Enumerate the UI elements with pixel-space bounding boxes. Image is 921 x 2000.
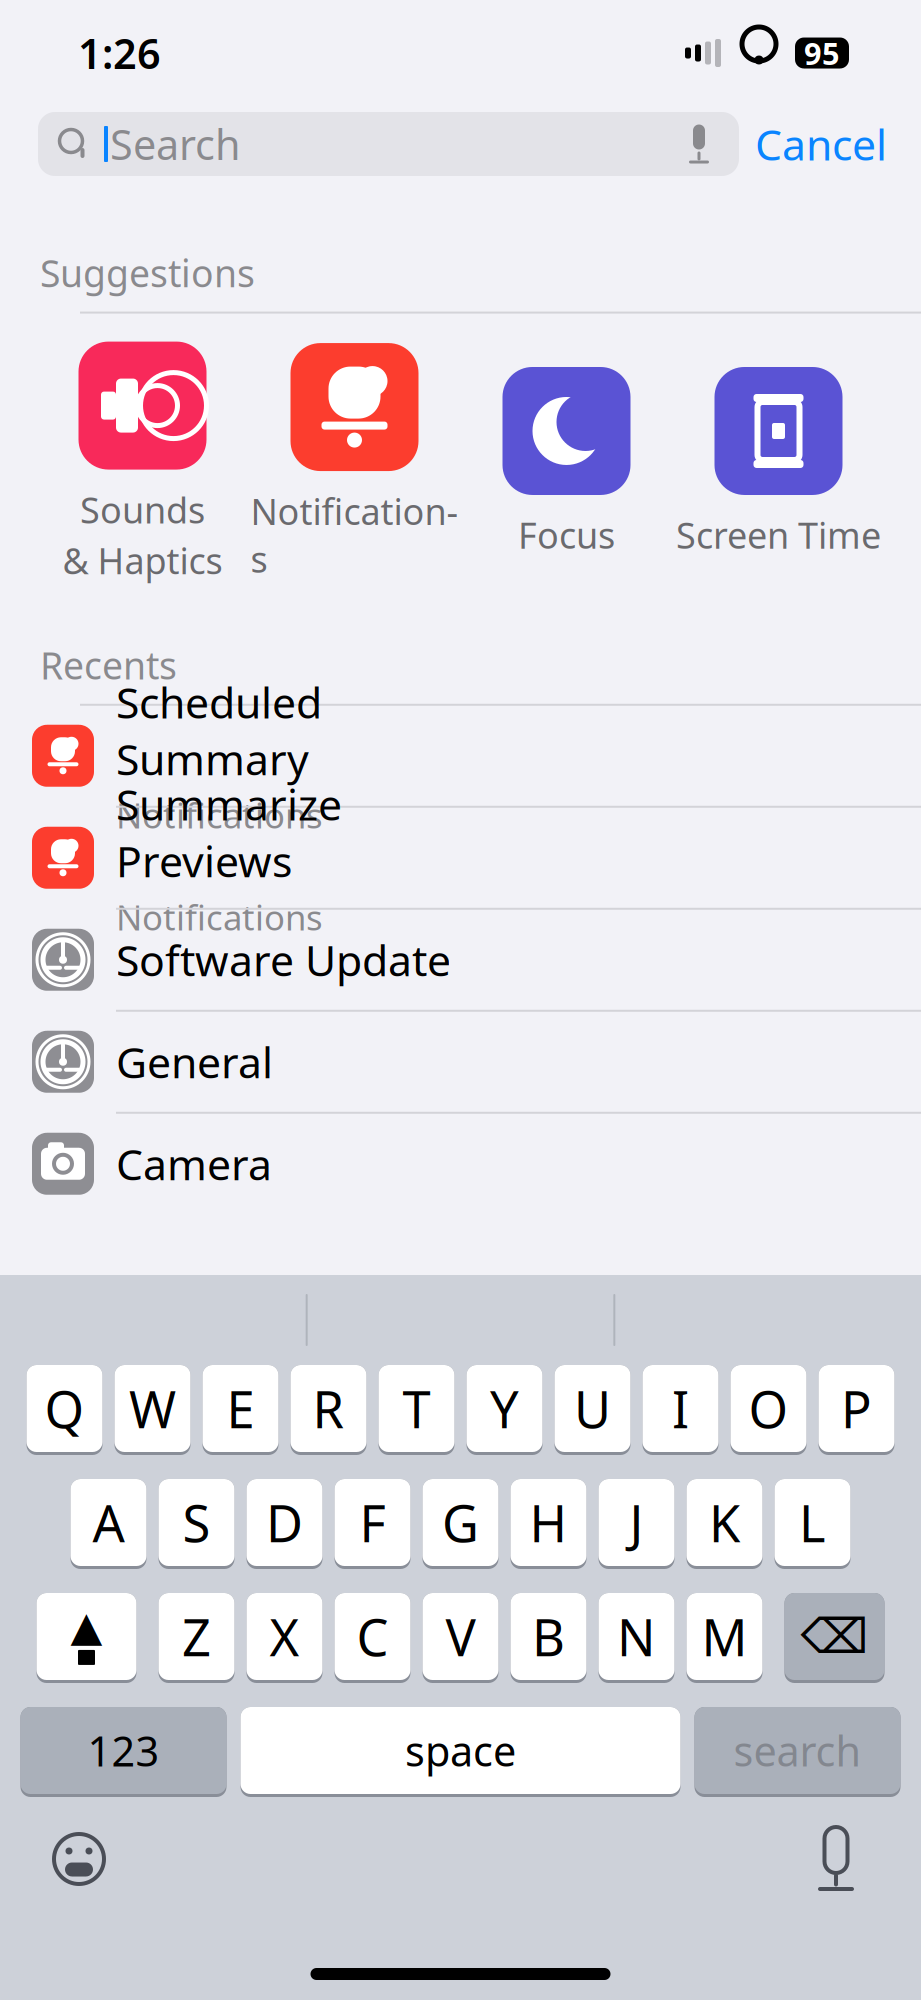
button[interactable]: Y — [466, 1365, 542, 1455]
button[interactable]: Sounds — [36, 342, 248, 584]
button[interactable]: Scheduled Summary — [0, 706, 921, 806]
staticText: E — [226, 1375, 254, 1442]
staticText: ⌫ — [800, 1609, 868, 1664]
staticText: 95 — [804, 33, 840, 73]
staticText: C — [356, 1603, 388, 1670]
staticText: B — [532, 1603, 565, 1670]
button[interactable]: I — [642, 1365, 718, 1455]
staticText: Sounds — [80, 486, 205, 533]
staticText: R — [312, 1375, 344, 1442]
button[interactable]: Delete — [784, 1593, 884, 1683]
button[interactable]: Notifications — [248, 343, 460, 583]
staticText: Notifications — [116, 894, 323, 940]
staticText: Recents — [40, 640, 177, 690]
button[interactable]: B — [510, 1593, 586, 1683]
staticText: S — [182, 1489, 210, 1556]
staticText: Focus — [518, 511, 615, 559]
staticText: Q — [44, 1375, 84, 1442]
button[interactable]: J — [598, 1479, 674, 1569]
button[interactable]: Screen Time — [672, 367, 884, 559]
staticText: 1:26 — [78, 26, 161, 80]
button[interactable]: D — [246, 1479, 322, 1569]
staticText: I — [672, 1375, 689, 1442]
button[interactable]: S — [158, 1479, 234, 1569]
staticText: & Haptics — [62, 536, 222, 584]
staticText: W — [129, 1375, 176, 1442]
staticText: search — [733, 1723, 861, 1778]
button[interactable]: space — [240, 1707, 680, 1797]
staticText: L — [799, 1489, 826, 1556]
button[interactable]: 123 — [20, 1707, 226, 1797]
button[interactable]: V — [422, 1593, 498, 1683]
staticText: F — [359, 1489, 385, 1556]
button[interactable]: General — [0, 1012, 921, 1112]
staticText: Summarize Previews — [116, 776, 342, 889]
staticText: P — [841, 1375, 872, 1442]
button[interactable]: Shift — [36, 1593, 136, 1683]
button[interactable]: Cancel — [755, 116, 887, 172]
button[interactable]: Software Update — [0, 910, 921, 1010]
button[interactable]: U — [554, 1365, 630, 1455]
button[interactable]: search — [694, 1707, 900, 1797]
button[interactable]: Dictation — [799, 1821, 873, 1897]
staticText: Screen Time — [676, 511, 881, 559]
button[interactable]: Emoji keyboard — [42, 1822, 116, 1896]
button[interactable]: O — [730, 1365, 806, 1455]
staticText: X — [269, 1603, 299, 1670]
staticText: Notifications — [116, 792, 323, 838]
staticText: Software Update — [116, 931, 451, 988]
staticText: Notifications — [250, 487, 458, 583]
staticText: O — [748, 1375, 788, 1442]
button[interactable]: G — [422, 1479, 498, 1569]
button[interactable]: Summarize Previews — [0, 808, 921, 908]
button[interactable]: Search — [38, 112, 739, 176]
button[interactable]: Focus — [460, 367, 672, 559]
staticText: A — [92, 1489, 124, 1556]
staticText: G — [442, 1489, 479, 1556]
button[interactable]: L — [774, 1479, 850, 1569]
button[interactable]: P — [818, 1365, 894, 1455]
staticText: Search — [110, 117, 241, 171]
button[interactable]: W — [114, 1365, 190, 1455]
staticText: Y — [490, 1375, 519, 1442]
staticText: Suggestions — [40, 248, 255, 298]
button[interactable]: Camera — [0, 1114, 921, 1214]
staticText: Cancel — [755, 116, 887, 172]
button[interactable]: C — [334, 1593, 410, 1683]
staticText: H — [529, 1489, 567, 1556]
button[interactable]: F — [334, 1479, 410, 1569]
button[interactable]: H — [510, 1479, 586, 1569]
staticText: D — [266, 1489, 303, 1556]
staticText: T — [402, 1375, 430, 1442]
staticText: General — [116, 1033, 273, 1090]
staticText: M — [701, 1603, 747, 1670]
staticText: K — [709, 1489, 740, 1556]
staticText: Camera — [116, 1135, 272, 1192]
button[interactable]: Z — [158, 1593, 234, 1683]
staticText: J — [629, 1489, 643, 1556]
button[interactable]: N — [598, 1593, 674, 1683]
staticText: U — [574, 1375, 611, 1442]
staticText: space — [405, 1723, 516, 1778]
staticText: 123 — [87, 1723, 159, 1778]
button[interactable]: M — [686, 1593, 762, 1683]
button[interactable]: E — [202, 1365, 278, 1455]
button[interactable]: A — [70, 1479, 146, 1569]
button[interactable]: R — [290, 1365, 366, 1455]
staticText: Z — [182, 1603, 211, 1670]
button[interactable]: X — [246, 1593, 322, 1683]
staticText: Scheduled Summary — [116, 674, 322, 787]
staticText: ▲ — [70, 1603, 102, 1650]
staticText: V — [445, 1603, 475, 1670]
button[interactable]: Q — [26, 1365, 102, 1455]
staticText: N — [617, 1603, 656, 1670]
button[interactable]: T — [378, 1365, 454, 1455]
button[interactable]: K — [686, 1479, 762, 1569]
